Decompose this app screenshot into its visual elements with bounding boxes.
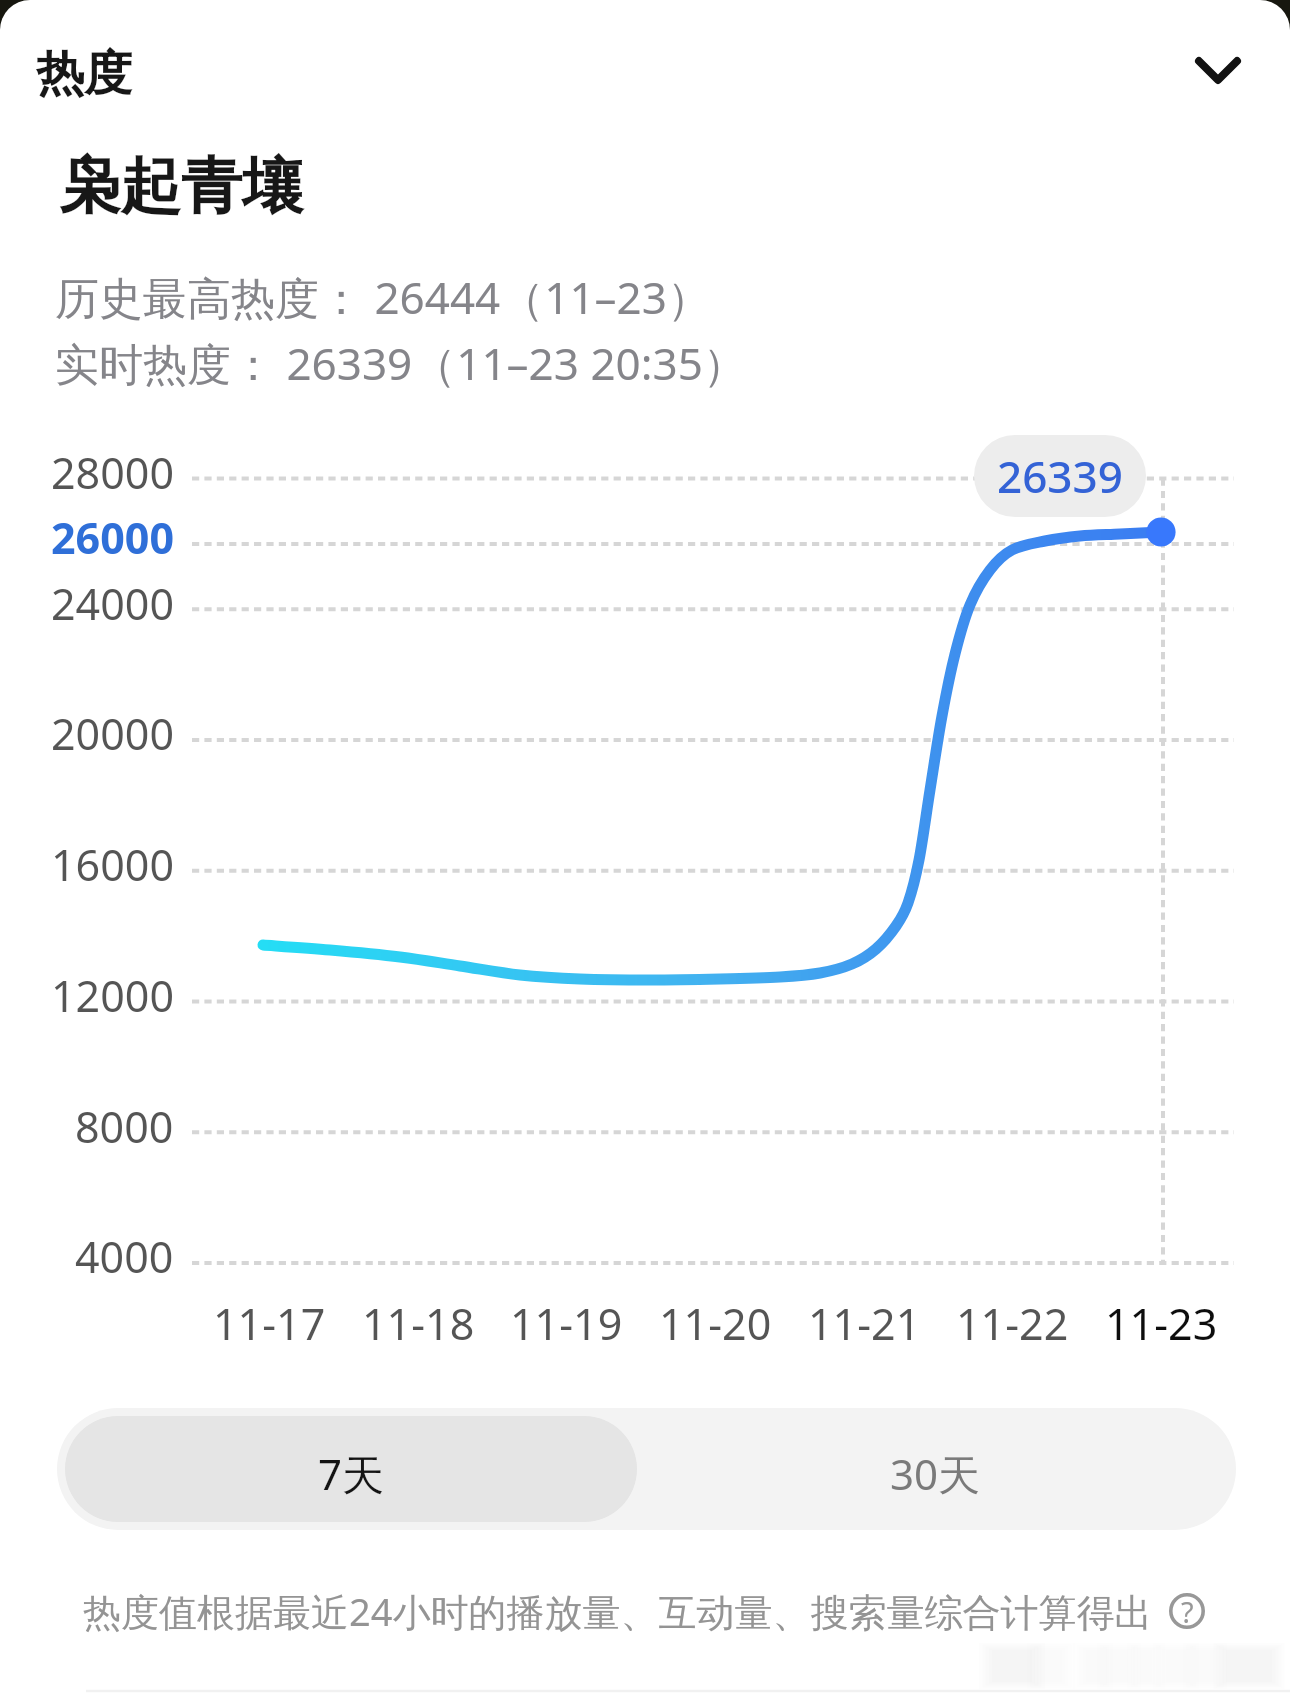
staticText: 12000 [51,966,174,1025]
staticText: 28000 [51,443,174,502]
staticText: 24000 [51,574,174,633]
staticText: 11-18 [362,1294,475,1353]
staticText: 8000 [75,1097,174,1156]
staticText: 11-22 [956,1294,1069,1353]
staticText: 11-21 [808,1294,921,1353]
staticText: 实时热度： 26339（11–23 20:35） [55,333,747,393]
staticText: 20000 [51,704,174,763]
staticText: ? [1181,1592,1194,1628]
staticText: 热度 [36,44,132,104]
staticText: 30天 [890,1445,981,1502]
button[interactable]: Help [1169,1593,1205,1629]
button[interactable]: 30天 [645,1408,1236,1530]
staticText: 11-23 [1105,1294,1218,1353]
button[interactable]: Collapse [1168,20,1268,120]
staticText: 热度值根据最近24小时的播放量、互动量、搜索量综合计算得出 [83,1585,1153,1637]
staticText: 11-20 [659,1294,772,1353]
staticText: 4000 [75,1227,174,1286]
button[interactable]: 7天 [65,1416,637,1522]
staticText: 16000 [51,835,174,894]
staticText: 11-17 [213,1294,326,1353]
staticText: 26339 [997,446,1123,506]
staticText: 枭起青壤 [59,148,303,225]
staticText: 26000 [51,508,174,567]
staticText: 历史最高热度： 26444（11–23） [55,267,711,327]
staticText: 11-19 [510,1294,623,1353]
staticText: 7天 [318,1445,385,1502]
